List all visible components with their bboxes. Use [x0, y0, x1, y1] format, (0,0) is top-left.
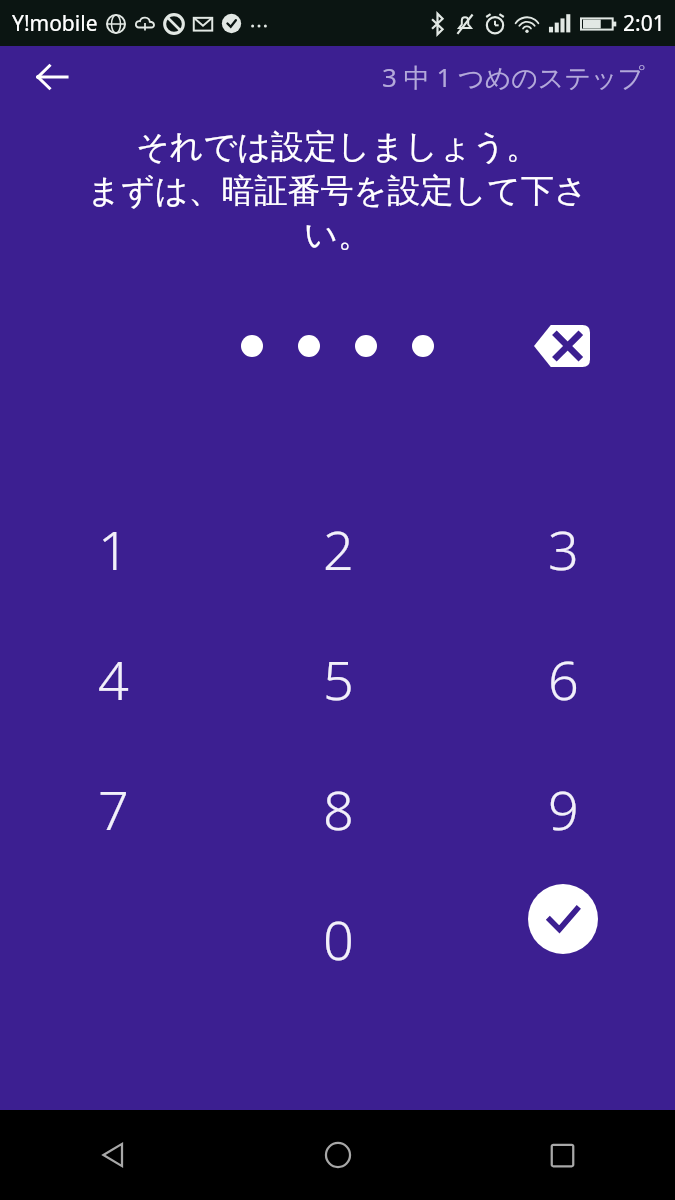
staticText: 9	[548, 772, 579, 846]
staticText: 3 中 1 つめのステップ	[382, 59, 645, 95]
staticText: 2	[323, 512, 354, 586]
staticText: 7	[98, 772, 129, 846]
staticText: 2:01	[623, 9, 665, 38]
button[interactable]: 5	[283, 624, 393, 734]
staticText: それでは設定しましょう。 まずは、暗証番号を設定して下さい。	[58, 126, 617, 256]
button[interactable]: Back	[0, 1110, 225, 1200]
button[interactable]: 0	[283, 884, 393, 994]
staticText: 5	[323, 642, 354, 716]
staticText: 3	[548, 512, 579, 586]
button[interactable]: 6	[508, 624, 618, 734]
button[interactable]: 3	[508, 494, 618, 604]
button[interactable]: 1	[58, 494, 168, 604]
button[interactable]: Back	[22, 47, 82, 107]
staticText: Y!mobile	[12, 9, 98, 38]
button[interactable]: 9	[508, 754, 618, 864]
staticText: 1	[98, 512, 129, 586]
button[interactable]: 8	[283, 754, 393, 864]
button[interactable]: 2	[283, 494, 393, 604]
staticText: 0	[323, 902, 354, 976]
staticText: 8	[323, 772, 354, 846]
button[interactable]: 4	[58, 624, 168, 734]
staticText: 4	[98, 642, 129, 716]
button[interactable]: Home	[225, 1110, 450, 1200]
button[interactable]: Recent apps	[450, 1110, 675, 1200]
staticText: 6	[548, 642, 579, 716]
button[interactable]: Backspace	[522, 316, 602, 376]
button[interactable]: Confirm	[528, 884, 598, 954]
button[interactable]: 7	[58, 754, 168, 864]
